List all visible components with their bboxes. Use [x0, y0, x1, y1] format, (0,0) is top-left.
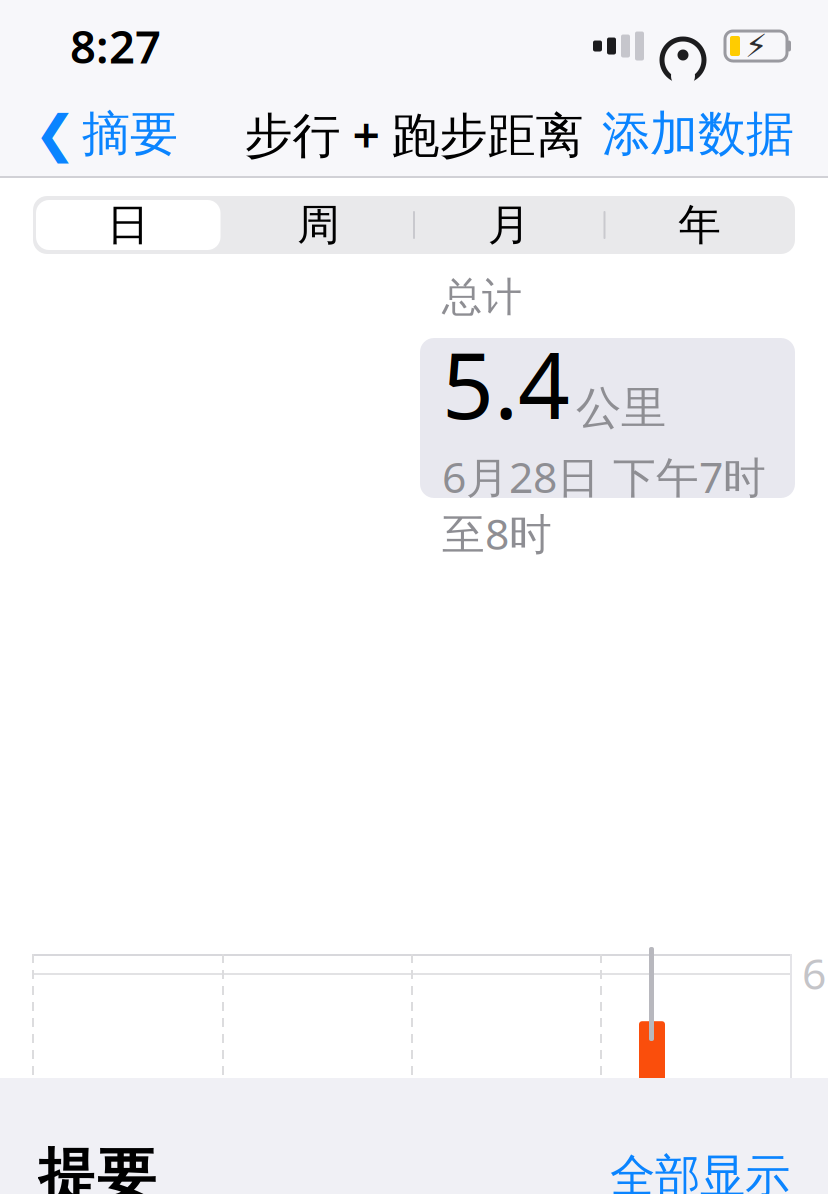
button[interactable]: 年	[604, 196, 795, 254]
staticText: 步行 + 跑步距离	[244, 102, 583, 166]
button[interactable]: 周	[223, 196, 414, 254]
button[interactable]: 日	[33, 196, 223, 254]
staticText: 摘要	[82, 104, 178, 163]
button[interactable]: 添加数据	[584, 94, 812, 173]
staticText: 月	[488, 199, 531, 251]
staticText: 日	[107, 199, 150, 251]
staticText: 6	[802, 945, 826, 1001]
staticText: 全部显示	[610, 1148, 790, 1194]
staticText: ❮	[34, 105, 76, 163]
staticText: 公里	[576, 380, 666, 436]
staticText: 添加数据	[602, 104, 794, 163]
button[interactable]: ❮	[16, 94, 196, 173]
staticText: 5.4	[442, 324, 570, 444]
staticText: 6月28日 下午7时至8时	[442, 448, 766, 561]
staticText: 提要	[38, 1140, 156, 1194]
staticText: 总计	[442, 273, 522, 322]
button[interactable]: 全部显示	[598, 1140, 790, 1194]
staticText: ⚡︎	[745, 28, 767, 64]
button[interactable]: 月	[414, 196, 604, 254]
staticText: 年	[678, 199, 721, 251]
staticText: 8:27	[70, 16, 161, 76]
staticText: 周	[297, 199, 340, 251]
